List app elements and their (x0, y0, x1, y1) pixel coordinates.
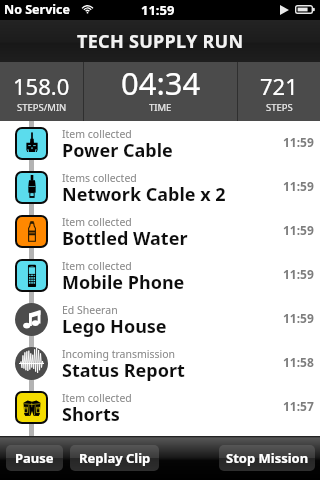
staticText: TIME (149, 101, 172, 114)
staticText: Item collected (62, 215, 132, 229)
staticText: Lego House (62, 314, 167, 339)
staticText: Incoming transmission (62, 347, 176, 361)
staticText: 11:58 (283, 354, 314, 370)
button[interactable]: Item collected (0, 209, 320, 253)
staticText: TECH SUPPLY RUN (77, 29, 244, 54)
staticText: No Service (4, 1, 70, 18)
staticText: Status Report (62, 358, 185, 383)
staticText: STEPS/MIN (17, 101, 67, 114)
button[interactable]: Incoming transmission (0, 341, 320, 385)
staticText: Item collected (62, 259, 132, 273)
staticText: Pause (15, 449, 54, 467)
staticText: Item collected (62, 127, 132, 141)
staticText: 11:59 (141, 1, 175, 19)
staticText: 11:59 (283, 310, 314, 326)
staticText: 11:59 (283, 266, 314, 282)
staticText: Power Cable (62, 138, 173, 163)
staticText: 158.0 (13, 71, 70, 101)
staticText: STEPS (266, 101, 293, 114)
staticText: Mobile Phone (62, 270, 185, 295)
button[interactable]: Stop Mission (219, 445, 315, 471)
staticText: Replay Clip (79, 449, 151, 467)
button[interactable]: Items collected (0, 165, 320, 209)
staticText: 721 (260, 71, 298, 101)
staticText: Stop Mission (226, 449, 309, 467)
staticText: Items collected (62, 171, 137, 185)
staticText: Bottled Water (62, 226, 188, 251)
staticText: Item collected (62, 391, 132, 405)
button[interactable]: Pause (6, 445, 63, 471)
staticText: Network Cable x 2 (62, 182, 226, 207)
staticText: 04:34 (121, 62, 201, 104)
button[interactable]: Item collected (0, 121, 320, 165)
staticText: 11:59 (283, 134, 314, 150)
button[interactable]: Replay Clip (70, 445, 159, 471)
button[interactable]: Item collected (0, 253, 320, 297)
button[interactable]: Item collected (0, 385, 320, 429)
staticText: Shorts (62, 402, 120, 427)
staticText: 11:59 (283, 178, 314, 194)
staticText: 11:57 (283, 398, 314, 414)
staticText: 11:59 (283, 222, 314, 238)
button[interactable]: Ed Sheeran (0, 297, 320, 341)
staticText: Ed Sheeran (62, 303, 118, 317)
